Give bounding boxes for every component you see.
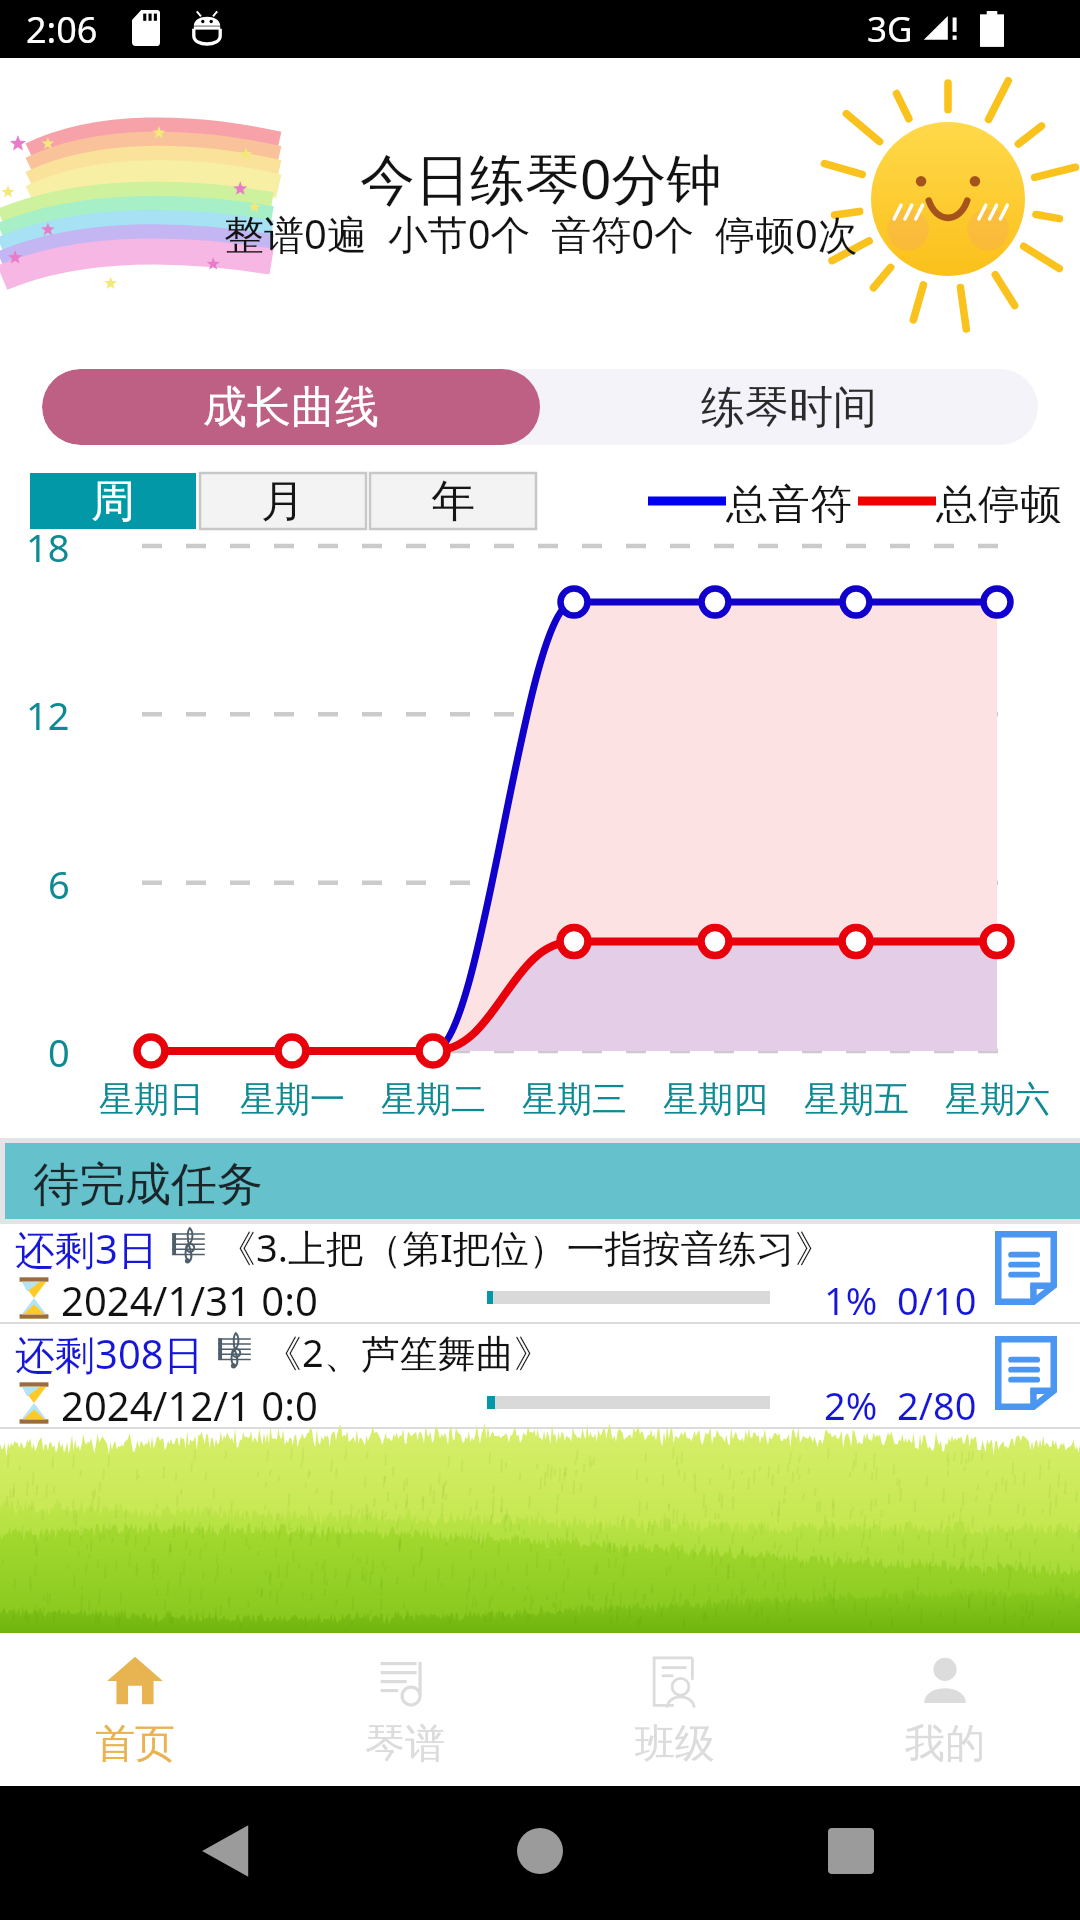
staticText: 星期一 [240,1077,345,1121]
button[interactable]: Open sheet music [995,1336,1057,1410]
button[interactable]: 练琴时间 [540,369,1038,445]
staticText: 1% 0/10 [824,1274,977,1326]
staticText: 今日练琴0分钟 [360,140,722,215]
staticText: 星期三 [522,1077,627,1121]
staticText: 整谱0遍 小节0个 音符0个 停顿0次 [224,206,858,261]
staticText: 还剩3日 [15,1221,158,1273]
staticText: 18 [26,521,70,573]
staticText: 星期四 [663,1077,768,1121]
staticText: 2:06 [26,5,98,54]
other: Class [646,1652,704,1710]
staticText: 琴谱 [365,1718,445,1768]
staticText: 《3.上把（第I把位）一指按音练习》 [218,1221,833,1273]
button[interactable]: 月 [200,473,366,529]
button[interactable]: 成长曲线 [42,369,540,445]
staticText: 星期日 [99,1077,204,1121]
other: Sheet music [376,1652,434,1710]
staticText: 成长曲线 [203,380,379,435]
button[interactable]: Sheet music [270,1633,540,1786]
staticText: 星期二 [381,1077,486,1121]
button[interactable]: 还剩3日 [0,1219,1080,1324]
staticText: 月 [261,474,305,529]
staticText: 还剩308日 [15,1326,204,1378]
staticText: 2024/1/31 0:0 [61,1273,318,1323]
button[interactable]: Class [540,1633,810,1786]
staticText: 待完成任务 [33,1156,263,1214]
staticText: 年 [431,474,475,529]
staticText: 6 [48,858,70,910]
staticText: 我的 [905,1718,985,1768]
staticText: 0 [48,1026,70,1078]
staticText: 《2、芦笙舞曲》 [264,1326,552,1378]
button[interactable]: Home [499,1810,581,1892]
other: Profile [916,1652,974,1710]
staticText: 练琴时间 [701,380,877,435]
button[interactable]: Open sheet music [995,1231,1057,1305]
staticText: 12 [26,689,70,741]
button[interactable]: 周 [30,473,196,529]
staticText: 星期五 [804,1077,909,1121]
button[interactable]: Profile [810,1633,1080,1786]
staticText: 总音符 [726,479,852,523]
button[interactable]: 年 [370,473,536,529]
staticText: 周 [91,474,135,529]
staticText: 2% 2/80 [824,1379,977,1431]
staticText: 首页 [95,1718,175,1768]
button[interactable]: 还剩308日 [0,1324,1080,1429]
staticText: 2024/12/1 0:0 [61,1378,318,1428]
staticText: 星期六 [945,1077,1050,1121]
staticText: 班级 [635,1718,715,1768]
button[interactable]: Recent apps [810,1810,892,1892]
staticText: 3G [867,5,913,53]
button[interactable]: Home [0,1633,270,1786]
button[interactable]: Back [186,1810,268,1892]
other: Home [106,1652,164,1710]
staticText: 总停顿 [936,479,1062,523]
